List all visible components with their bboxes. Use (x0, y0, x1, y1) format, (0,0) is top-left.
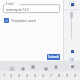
button[interactable]: 5 (31, 71, 39, 80)
button[interactable]: Template used (3, 17, 37, 24)
button[interactable]: Emoji (40, 63, 47, 70)
button[interactable]: Tool (69, 1, 75, 7)
button[interactable]: Settings (17, 63, 24, 70)
staticText: example123 (6, 7, 29, 12)
button[interactable]: Marker (69, 48, 75, 54)
button[interactable]: Email (3, 2, 60, 13)
staticText: 6 (42, 73, 45, 78)
staticText: Email (6, 2, 14, 6)
button[interactable]: More (68, 65, 75, 72)
button[interactable]: 3 (15, 71, 23, 80)
staticText: 4 (26, 73, 29, 78)
staticText: 5 (34, 73, 37, 78)
button[interactable]: Keyboard options (69, 63, 75, 69)
staticText: 0 (74, 73, 77, 78)
button[interactable]: 7 (47, 71, 55, 80)
staticText: 3 (18, 73, 21, 78)
staticText: 1 (3, 73, 6, 78)
button[interactable]: Scroll (67, 11, 76, 39)
button[interactable]: 9 (63, 71, 71, 80)
button[interactable]: 8 (55, 71, 63, 80)
button[interactable]: 6 (39, 71, 47, 80)
button[interactable]: Voice input (6, 63, 13, 70)
button[interactable]: Delete (52, 63, 59, 70)
staticText: 9 (66, 73, 69, 78)
staticText: 8 (58, 73, 61, 78)
button[interactable]: 4 (23, 71, 31, 80)
staticText: 7 (50, 73, 53, 78)
button[interactable]: 1 (1, 71, 8, 80)
button[interactable]: 0 (71, 71, 79, 80)
staticText: Template used (11, 18, 36, 23)
button[interactable]: Clipboard (29, 63, 36, 70)
staticText: Submit (48, 55, 59, 59)
button[interactable]: 2 (8, 71, 15, 80)
staticText: 2 (10, 73, 13, 78)
button[interactable]: Grid (68, 56, 75, 63)
button[interactable]: Submit (47, 54, 60, 60)
